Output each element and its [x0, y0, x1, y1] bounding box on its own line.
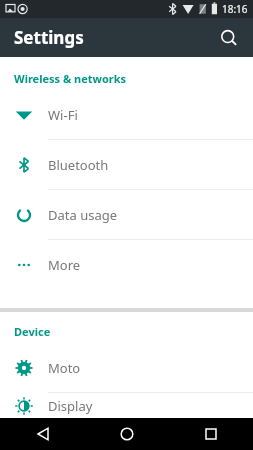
staticText: Display: [48, 397, 93, 415]
button[interactable]: Search: [213, 22, 245, 54]
staticText: Data usage: [48, 206, 118, 224]
button[interactable]: Moto: [0, 343, 253, 392]
button[interactable]: Recents: [169, 418, 253, 450]
button[interactable]: Wi-Fi: [0, 90, 253, 139]
button[interactable]: Bluetooth: [0, 140, 253, 189]
button[interactable]: Display: [0, 393, 253, 418]
button[interactable]: Data usage: [0, 190, 253, 239]
staticText: Device: [14, 324, 51, 339]
button[interactable]: Back: [0, 418, 85, 450]
staticText: Wi-Fi: [48, 106, 78, 124]
button[interactable]: Home: [85, 418, 169, 450]
staticText: More: [48, 256, 81, 274]
staticText: Settings: [14, 26, 84, 49]
staticText: Moto: [48, 359, 81, 377]
staticText: Wireless & networks: [14, 71, 127, 86]
staticText: 18:16: [222, 2, 248, 16]
staticText: Bluetooth: [48, 156, 109, 174]
button[interactable]: More: [0, 240, 253, 289]
